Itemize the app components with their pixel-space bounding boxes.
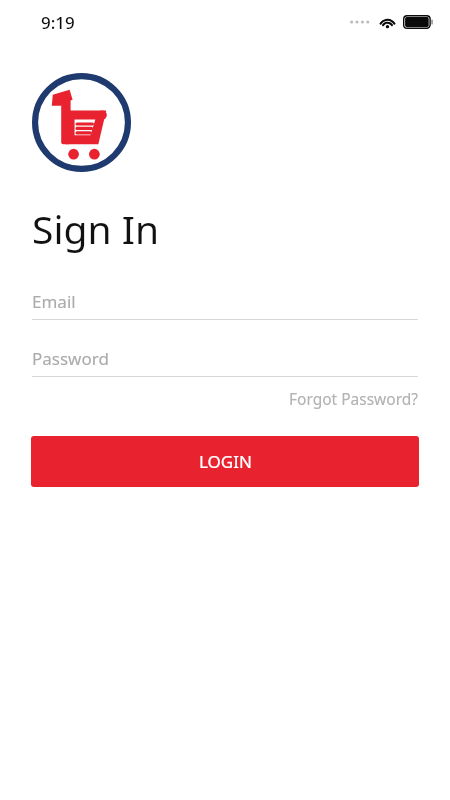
staticText: Sign In: [32, 202, 160, 255]
other: App logo: [32, 73, 131, 172]
button[interactable]: Forgot Password?: [288, 386, 418, 411]
staticText: Password: [32, 347, 109, 370]
staticText: 9:19: [41, 11, 75, 34]
button[interactable]: Password: [32, 347, 418, 377]
button[interactable]: Email: [32, 290, 418, 320]
staticText: Email: [32, 290, 76, 313]
button[interactable]: LOGIN: [31, 436, 419, 487]
staticText: LOGIN: [199, 450, 252, 473]
